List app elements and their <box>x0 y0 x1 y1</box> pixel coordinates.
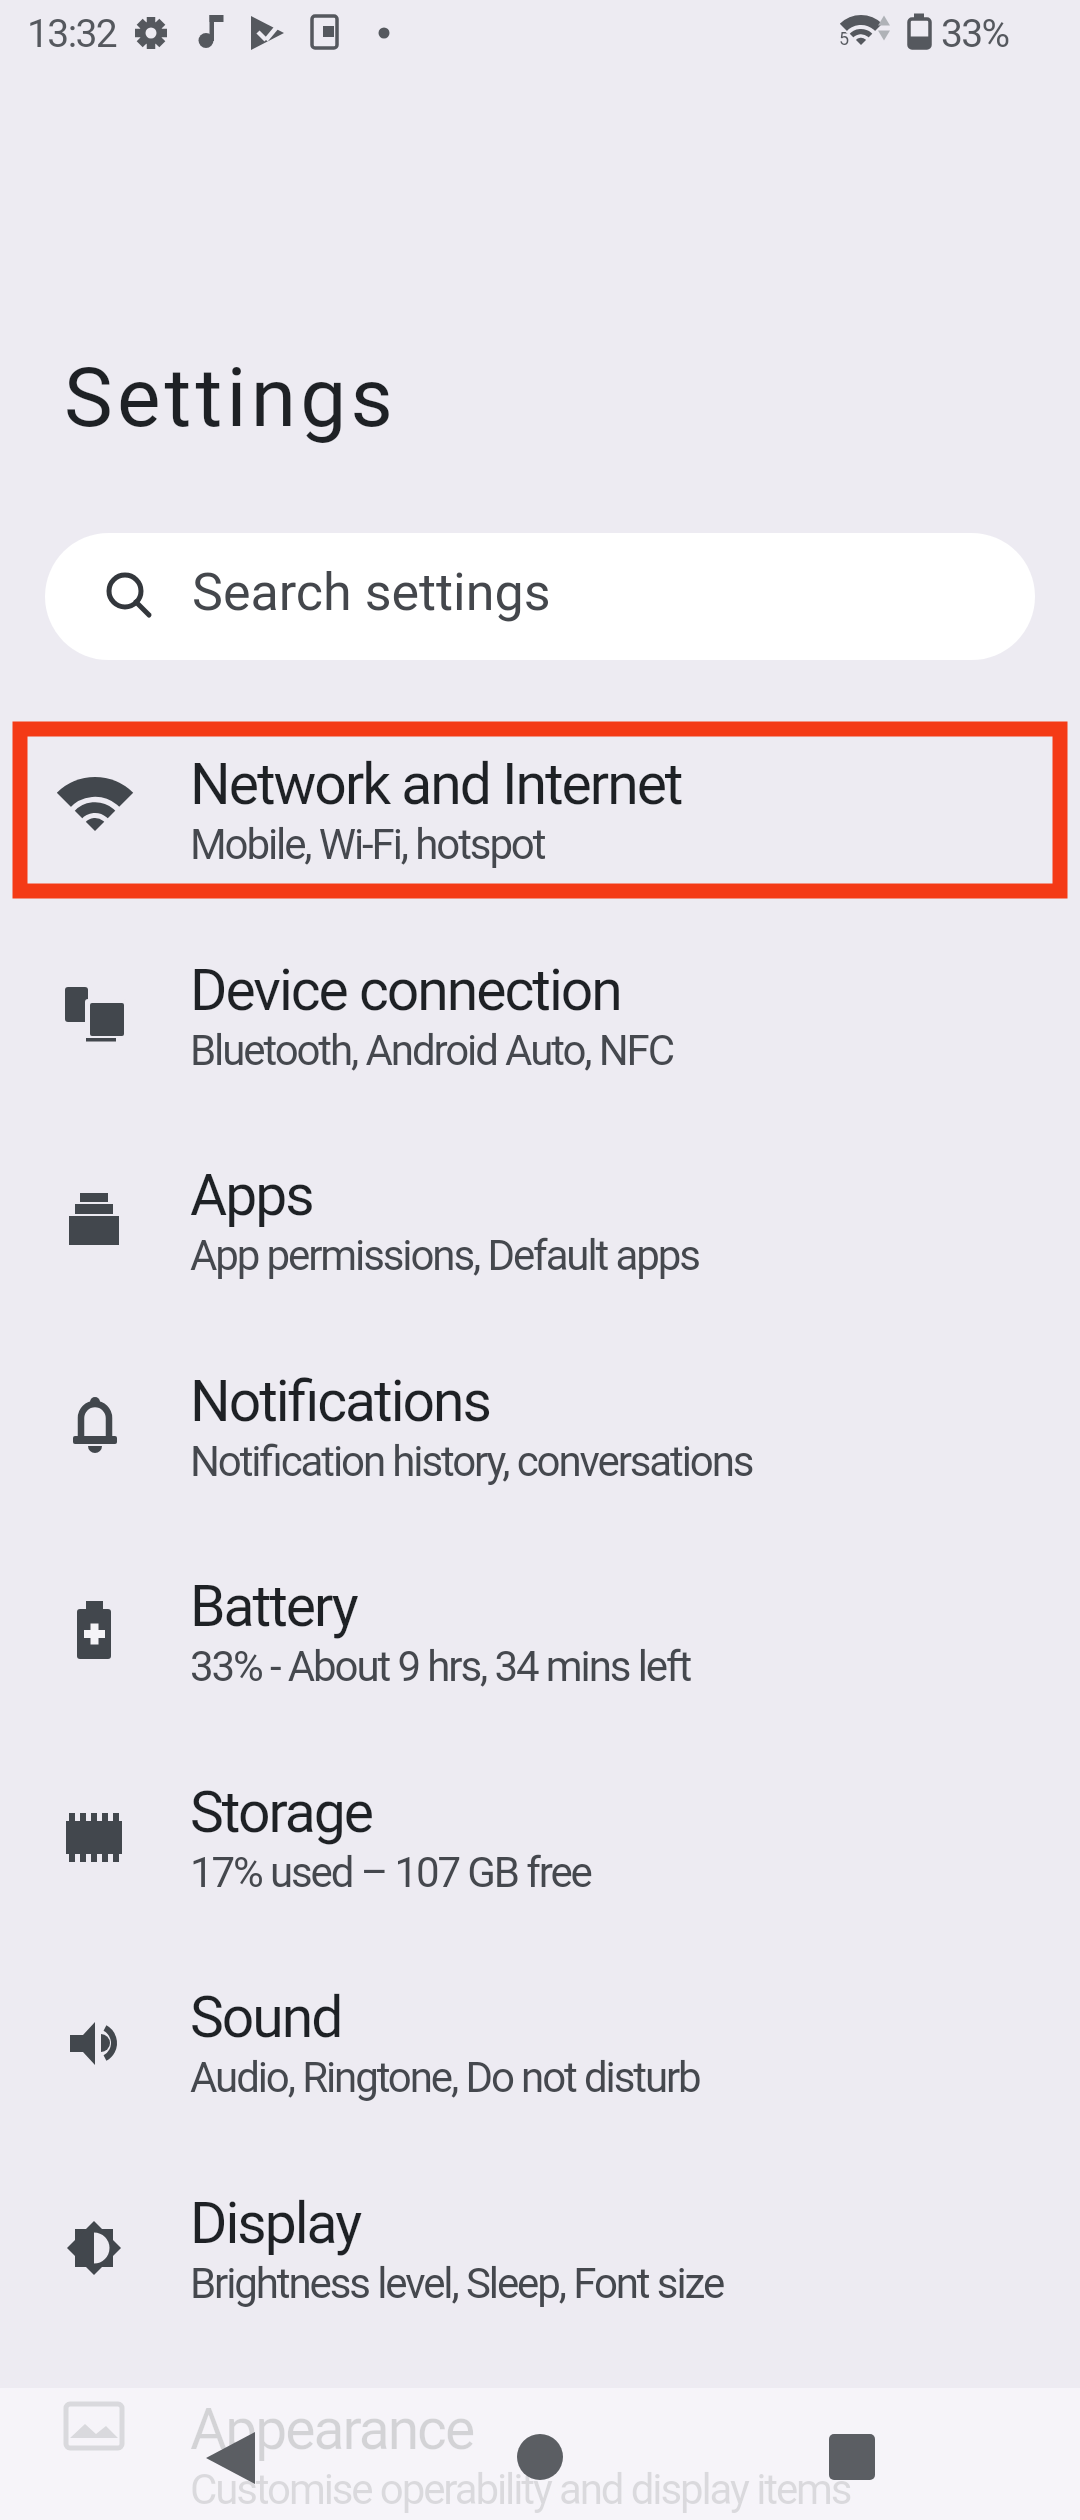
button[interactable] <box>0 1134 1080 1310</box>
staticText: 5 <box>839 28 850 49</box>
staticText: Settings <box>64 350 398 446</box>
button[interactable] <box>0 1956 1080 2132</box>
button[interactable] <box>0 2368 1080 2520</box>
staticText: Notification history, conversations <box>190 1437 753 1486</box>
button[interactable] <box>0 1751 1080 1927</box>
staticText: Appearance <box>190 2396 474 2463</box>
staticText: Customise operability and display items <box>190 2465 851 2514</box>
staticText: Sound <box>190 1984 342 2051</box>
staticText: Display <box>190 2190 361 2257</box>
staticText: 13:32 <box>27 11 117 57</box>
staticText: Bluetooth, Android Auto, NFC <box>190 1026 673 1075</box>
staticText: App permissions, Default apps <box>190 1231 699 1280</box>
staticText: Storage <box>190 1779 372 1846</box>
staticText: 33% <box>941 11 1009 57</box>
staticText: Network and Internet <box>190 751 682 818</box>
staticText: 17% used – 107 GB free <box>190 1848 591 1897</box>
staticText: Notifications <box>190 1368 491 1435</box>
staticText: Device connection <box>190 957 621 1024</box>
staticText: Battery <box>190 1573 357 1640</box>
staticText: Apps <box>190 1162 313 1229</box>
button[interactable] <box>0 929 1080 1105</box>
staticText: Mobile, Wi-Fi, hotspot <box>190 820 545 869</box>
button[interactable]: Search settings <box>45 533 1035 660</box>
button[interactable] <box>782 2398 922 2510</box>
staticText: 33% - About 9 hrs, 34 mins left <box>190 1642 691 1691</box>
button[interactable] <box>160 2398 300 2510</box>
button[interactable] <box>0 2162 1080 2338</box>
staticText: Search settings <box>192 562 551 623</box>
button[interactable] <box>0 723 1080 899</box>
button[interactable] <box>470 2398 610 2510</box>
staticText: Brightness level, Sleep, Font size <box>190 2259 724 2308</box>
button[interactable] <box>0 1340 1080 1516</box>
staticText: Audio, Ringtone, Do not disturb <box>190 2053 700 2102</box>
button[interactable] <box>0 1545 1080 1721</box>
